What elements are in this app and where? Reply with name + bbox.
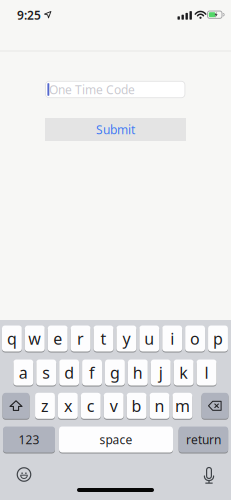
button[interactable]: return (179, 426, 228, 453)
button[interactable]: u (139, 325, 159, 352)
staticText: r (77, 328, 84, 349)
staticText: 123 (18, 431, 39, 447)
staticText: 9:25 (17, 7, 41, 23)
button[interactable]: i (162, 325, 182, 352)
button[interactable]: Shift (2, 392, 29, 419)
button[interactable]: 123 (3, 426, 55, 453)
staticText: w (28, 328, 41, 349)
button[interactable]: Dictation (197, 463, 221, 487)
staticText: o (190, 328, 200, 349)
staticText: u (144, 328, 154, 349)
button[interactable]: h (128, 359, 148, 386)
staticText: a (19, 362, 28, 383)
button[interactable]: One Time Code (45, 81, 185, 98)
staticText: l (204, 362, 208, 383)
staticText: p (213, 328, 223, 349)
button[interactable]: p (208, 325, 228, 352)
button[interactable]: t (93, 325, 113, 352)
button[interactable]: y (116, 325, 136, 352)
staticText: g (110, 362, 120, 383)
staticText: d (64, 362, 74, 383)
staticText: j (159, 362, 163, 383)
staticText: One Time Code (49, 81, 135, 97)
staticText: f (89, 362, 95, 383)
button[interactable]: d (59, 359, 79, 386)
staticText: b (132, 395, 142, 416)
staticText: x (64, 395, 72, 416)
staticText: Submit (96, 121, 135, 137)
staticText: y (122, 328, 130, 349)
staticText: space (99, 431, 132, 447)
button[interactable]: g (105, 359, 125, 386)
staticText: t (100, 328, 106, 349)
staticText: m (175, 395, 190, 416)
button[interactable]: k (174, 359, 194, 386)
button[interactable]: w (25, 325, 45, 352)
button[interactable]: x (58, 392, 78, 419)
button[interactable]: c (81, 392, 101, 419)
button[interactable]: s (36, 359, 56, 386)
button[interactable]: v (104, 392, 124, 419)
button[interactable]: o (185, 325, 205, 352)
button[interactable]: z (35, 392, 55, 419)
staticText: return (186, 431, 221, 447)
button[interactable]: Submit (45, 118, 186, 141)
button[interactable]: f (82, 359, 102, 386)
button[interactable]: r (71, 325, 90, 352)
staticText: h (133, 362, 143, 383)
staticText: v (110, 395, 118, 416)
staticText: k (179, 362, 188, 383)
button[interactable]: m (172, 392, 192, 419)
button[interactable]: a (13, 359, 33, 386)
button[interactable]: Delete (201, 392, 228, 419)
button[interactable]: b (127, 392, 146, 419)
button[interactable]: space (59, 426, 173, 453)
staticText: s (42, 362, 50, 383)
button[interactable]: q (2, 325, 22, 352)
button[interactable]: Emoji (12, 462, 36, 486)
staticText: c (87, 395, 95, 416)
button[interactable]: n (150, 392, 169, 419)
staticText: n (154, 395, 164, 416)
button[interactable]: e (48, 325, 68, 352)
staticText: q (7, 328, 17, 349)
staticText: i (170, 328, 174, 349)
button[interactable]: l (197, 359, 216, 386)
button[interactable]: j (151, 359, 171, 386)
staticText: z (41, 395, 49, 416)
staticText: e (53, 328, 62, 349)
